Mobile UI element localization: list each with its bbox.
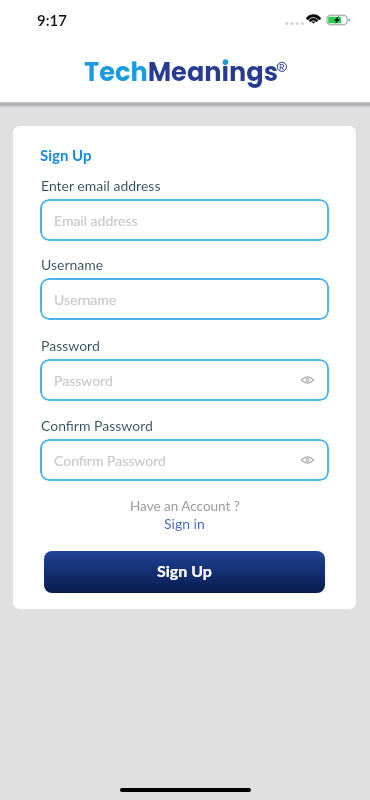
button[interactable]: Confirm Password	[40, 439, 329, 481]
button[interactable]: Username	[40, 278, 329, 320]
staticText: TechMeanings®	[84, 54, 286, 90]
staticText: R	[279, 61, 285, 74]
staticText: Username	[54, 291, 117, 308]
button[interactable]: Sign in	[158, 514, 211, 533]
staticText: Password	[54, 372, 113, 389]
staticText: Confirm Password	[41, 417, 153, 434]
button[interactable]: Sign Up	[44, 551, 325, 593]
staticText: Enter email address	[41, 177, 161, 194]
staticText: 9:17	[37, 11, 67, 29]
staticText: Confirm Password	[54, 452, 166, 469]
staticText: Username	[41, 256, 104, 273]
staticText: Password	[41, 337, 100, 354]
button[interactable]: Password	[40, 359, 329, 401]
staticText: Sign Up	[40, 146, 92, 164]
staticText: Have an Account ?	[130, 498, 240, 514]
button[interactable]: Email address	[40, 199, 329, 241]
button[interactable]: Show password	[296, 449, 318, 471]
staticText: Email address	[54, 212, 138, 229]
button[interactable]: Show password	[296, 369, 318, 391]
staticText: Sign Up	[157, 561, 212, 580]
